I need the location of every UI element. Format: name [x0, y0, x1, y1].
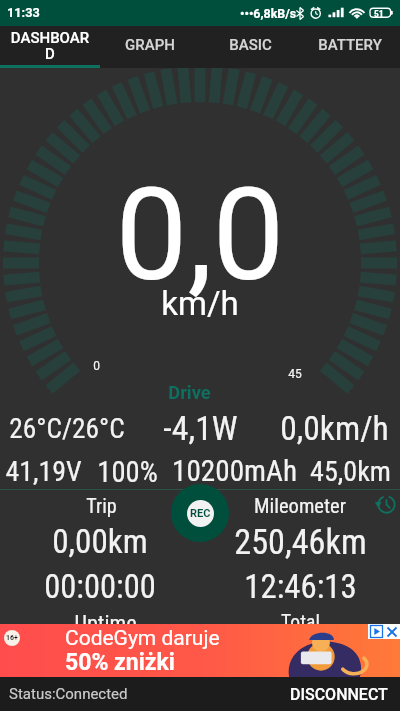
staticText: BATTERY — [318, 36, 382, 54]
staticText: DASHBOARD — [8, 29, 92, 62]
staticText: km/h — [161, 284, 239, 323]
button[interactable]: 16+ — [0, 624, 400, 677]
staticText: Uptime — [74, 610, 137, 636]
staticText: GRAPH — [125, 36, 175, 54]
staticText: Status:Connected — [9, 685, 128, 703]
staticText: 45 — [288, 367, 302, 381]
staticText: 0,0km/h — [280, 409, 389, 448]
staticText: REC — [190, 507, 211, 520]
staticText: Trip — [86, 494, 117, 518]
staticText: BASIC — [229, 36, 272, 54]
staticText: 41,19V — [5, 455, 82, 488]
staticText: 0,00km — [52, 522, 148, 561]
staticText: 0,0 — [115, 160, 285, 310]
staticText: 00:00:00 — [44, 568, 156, 606]
staticText: 50% zniżki — [65, 649, 175, 676]
button[interactable]: DISCONNECT — [278, 679, 400, 710]
staticText: 100% — [97, 455, 158, 489]
button[interactable]: Reset trip — [375, 493, 398, 516]
staticText: 250,46km — [234, 522, 367, 562]
button[interactable]: BATTERY — [300, 26, 400, 68]
staticText: 51 — [374, 8, 384, 19]
staticText: CodeGym daruje — [65, 626, 220, 651]
button[interactable]: Record — [171, 484, 229, 542]
staticText: 10200mAh — [172, 454, 297, 488]
staticText: •••6,8kB/s — [240, 6, 297, 21]
button[interactable]: GRAPH — [100, 26, 200, 68]
staticText: 45,0km — [310, 455, 391, 488]
staticText: Drive — [168, 382, 211, 403]
staticText: 26°C/26°C — [9, 413, 125, 445]
staticText: 0 — [93, 359, 100, 373]
staticText: Mileometer — [254, 494, 346, 518]
staticText: 11:33 — [7, 5, 40, 20]
button[interactable]: BASIC — [200, 26, 300, 68]
staticText: Total — [281, 611, 320, 634]
button[interactable]: DASHBOARD — [0, 26, 100, 68]
staticText: 16+ — [6, 634, 18, 642]
staticText: 12:46:13 — [244, 568, 357, 606]
staticText: -4,1W — [163, 409, 238, 449]
staticText: DISCONNECT — [290, 685, 388, 704]
